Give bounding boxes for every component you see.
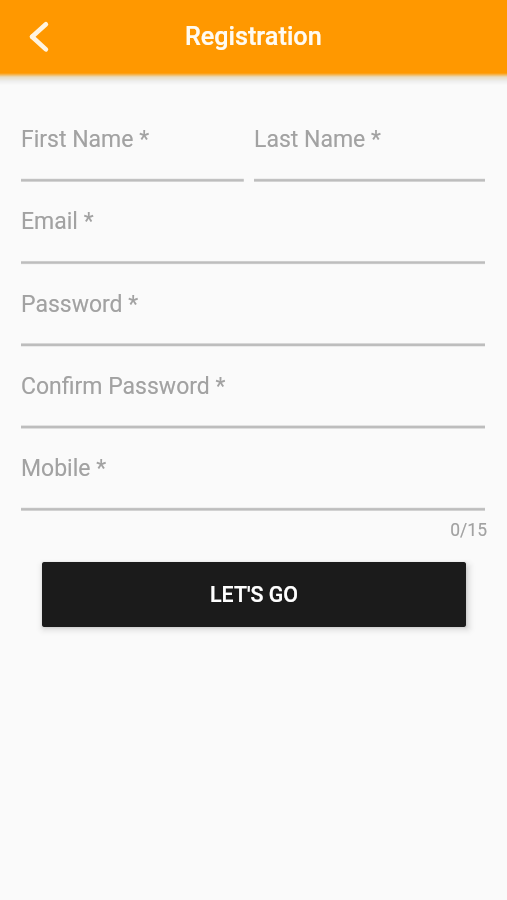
staticText: 0/15 (0, 520, 487, 541)
button[interactable]: LET'S GO (42, 562, 466, 627)
staticText: Registration (185, 22, 322, 52)
button[interactable]: Password * (21, 265, 485, 345)
staticText: Email * (21, 208, 94, 235)
staticText: Password * (21, 291, 139, 318)
button[interactable]: Email * (21, 182, 485, 262)
button[interactable]: First Name * (21, 100, 244, 180)
button[interactable]: Back (11, 10, 67, 66)
staticText: Confirm Password * (21, 373, 226, 400)
staticText: LET'S GO (210, 582, 299, 607)
button[interactable]: Last Name * (254, 100, 485, 180)
button[interactable]: Confirm Password * (21, 347, 485, 427)
staticText: Last Name * (254, 126, 381, 153)
staticText: First Name * (21, 126, 150, 153)
button[interactable]: Mobile * (21, 429, 485, 509)
staticText: Mobile * (21, 455, 107, 482)
